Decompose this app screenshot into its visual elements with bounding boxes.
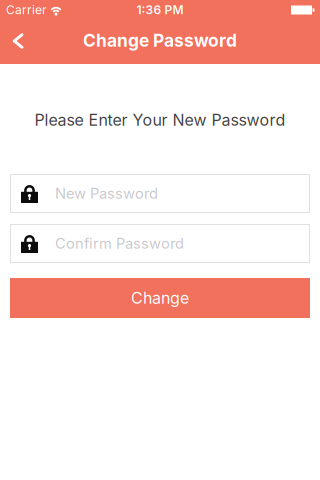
button[interactable]: Change xyxy=(10,278,310,318)
button[interactable]: New Password xyxy=(10,174,310,213)
staticText: 1:36 PM xyxy=(136,3,183,17)
staticText: Carrier xyxy=(6,3,47,17)
staticText: Confirm Password xyxy=(55,235,184,252)
staticText: Change Password xyxy=(83,30,237,51)
staticText: Change xyxy=(131,289,189,307)
button[interactable]: Confirm Password xyxy=(10,224,310,263)
staticText: Please Enter Your New Password xyxy=(34,111,285,129)
staticText: New Password xyxy=(55,185,158,202)
button[interactable]: Back xyxy=(0,21,24,63)
